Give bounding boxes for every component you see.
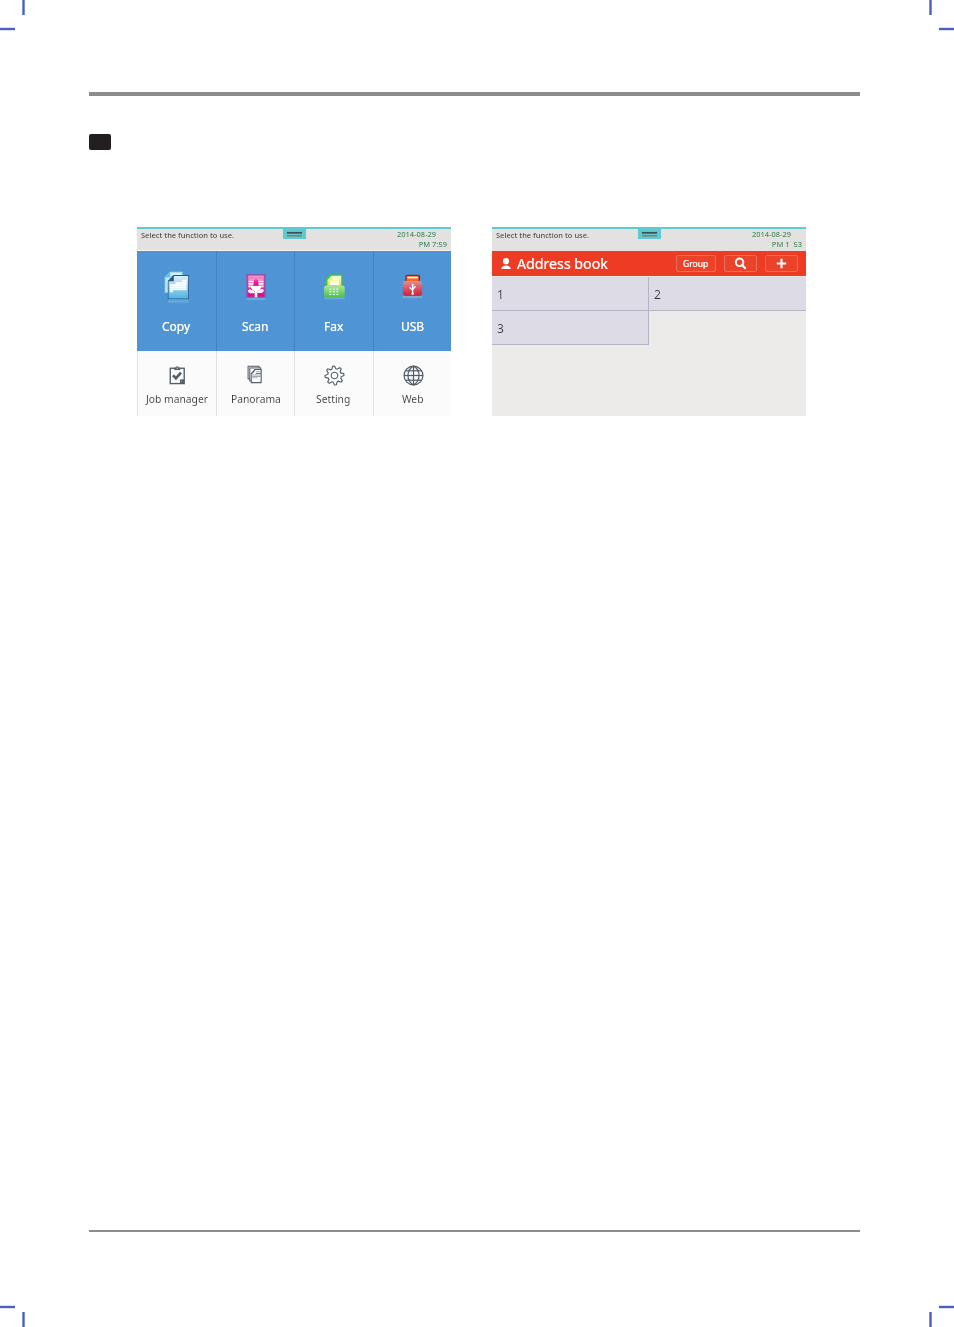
staticText: Setting (316, 392, 351, 406)
staticText: Web (402, 392, 424, 406)
staticText: 2014-08-29 (752, 229, 792, 239)
staticText: 2 (654, 286, 661, 302)
button[interactable]: Search (724, 255, 757, 272)
staticText: Job manager (146, 392, 208, 406)
staticText: Fax (324, 318, 344, 334)
button[interactable]: Add contact (765, 255, 798, 272)
staticText: 3 (497, 320, 504, 336)
staticText: Group (683, 258, 709, 270)
staticText: Select the function to use. (496, 230, 590, 240)
staticText: Panorama (231, 392, 281, 406)
staticText: PM 7:59 (397, 239, 447, 249)
staticText: Select the function to use. (141, 230, 235, 240)
button[interactable]: Scan (216, 251, 295, 351)
staticText: 2014-08-29 (397, 229, 437, 239)
staticText: PM 1 53 (752, 239, 802, 249)
button[interactable]: USB (373, 251, 452, 351)
button[interactable]: 2 (649, 277, 806, 310)
button[interactable]: Web (373, 351, 452, 416)
button[interactable]: Setting (294, 351, 373, 416)
button[interactable]: Job manager (137, 351, 216, 416)
button[interactable]: 3 (492, 311, 648, 344)
button[interactable]: 1 (492, 277, 648, 310)
button[interactable]: Panorama (216, 351, 295, 416)
button[interactable]: Open status panel (638, 229, 661, 239)
staticText: 1 (497, 286, 504, 302)
staticText: USB (401, 318, 425, 334)
staticText: Address book (517, 254, 608, 273)
button[interactable]: Fax (294, 251, 373, 351)
button[interactable]: Copy (137, 251, 216, 351)
staticText: Copy (162, 318, 191, 334)
button[interactable]: Open status panel (283, 229, 306, 239)
button[interactable]: Group (676, 255, 716, 272)
staticText: Scan (242, 318, 269, 334)
